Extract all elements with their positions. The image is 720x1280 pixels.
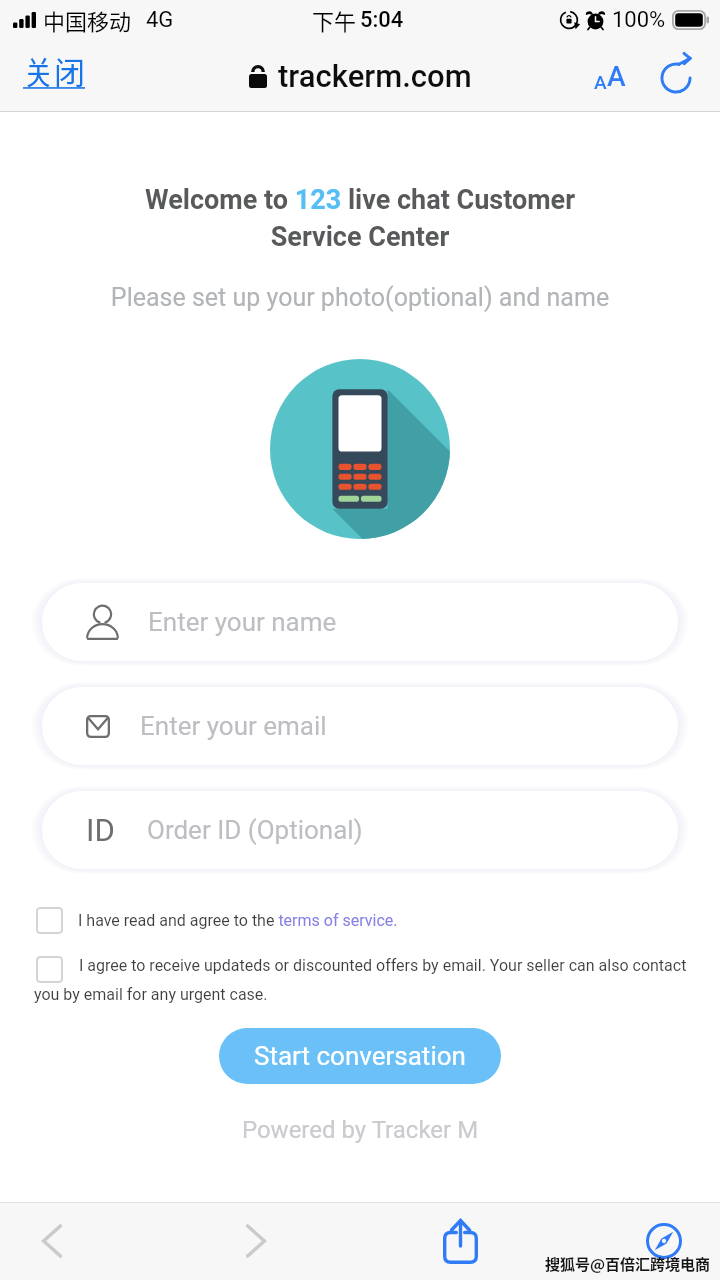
staticText: Welcome to 123 live chat Customer Servic… xyxy=(122,184,598,253)
button[interactable]: Enter your name xyxy=(42,583,678,661)
staticText: 100% xyxy=(612,7,666,33)
staticText: A xyxy=(607,60,626,93)
staticText: 4G xyxy=(146,7,174,33)
button[interactable]: Start conversation xyxy=(219,1028,501,1084)
button[interactable]: Checkbox xyxy=(36,907,63,934)
staticText: trackerm.com xyxy=(278,58,472,94)
staticText: 关闭 xyxy=(23,48,85,93)
staticText: Start conversation xyxy=(254,1041,466,1071)
staticText: Powered by Tracker M xyxy=(0,1116,720,1144)
button[interactable]: Back xyxy=(16,1202,88,1280)
staticText: 5:04 xyxy=(360,7,404,33)
staticText: A xyxy=(594,71,607,93)
button[interactable]: Text size options xyxy=(584,50,636,102)
staticText: Order ID (Optional) xyxy=(147,815,363,845)
staticText: I agree to receive updateds or discounte… xyxy=(34,956,706,1004)
staticText: Enter your name xyxy=(148,607,337,637)
staticText: 中国移动 xyxy=(43,4,132,36)
staticText: 搜狐号@百倍汇跨境电商 xyxy=(545,1253,711,1275)
button[interactable]: Checkbox xyxy=(36,956,63,983)
button[interactable]: Tabs xyxy=(628,1202,700,1280)
button[interactable]: ID xyxy=(42,791,678,869)
staticText: ID xyxy=(86,812,115,848)
staticText: Enter your email xyxy=(140,711,327,741)
button[interactable]: 关闭 xyxy=(17,40,91,111)
staticText: Please set up your photo(optional) and n… xyxy=(0,283,720,312)
button[interactable]: Reload page xyxy=(650,50,702,102)
button[interactable]: Enter your email xyxy=(42,687,678,765)
button[interactable]: Share xyxy=(424,1202,496,1280)
staticText: I have read and agree to the terms of se… xyxy=(78,911,398,930)
button[interactable]: Forward xyxy=(220,1202,292,1280)
staticText: 下午 xyxy=(312,4,357,36)
